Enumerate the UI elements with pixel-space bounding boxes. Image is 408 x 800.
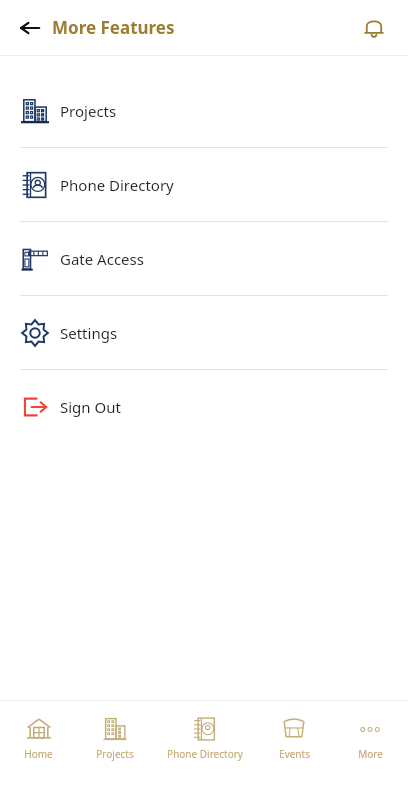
button[interactable]: More: [332, 701, 408, 774]
staticText: Events: [279, 747, 310, 761]
staticText: Projects: [60, 101, 117, 121]
staticText: Phone Directory: [167, 747, 243, 761]
staticText: Gate Access: [60, 249, 144, 269]
button[interactable]: Projects: [0, 74, 408, 147]
staticText: Sign Out: [60, 397, 121, 417]
staticText: Home: [24, 747, 53, 761]
button[interactable]: Back: [12, 10, 48, 46]
button[interactable]: Phone Directory: [153, 701, 256, 774]
button[interactable]: Events: [256, 701, 332, 774]
staticText: More Features: [52, 16, 175, 39]
button[interactable]: Home: [0, 701, 77, 774]
button[interactable]: Projects: [77, 701, 153, 774]
button[interactable]: Phone Directory: [0, 148, 408, 221]
staticText: Phone Directory: [60, 175, 174, 195]
staticText: Settings: [60, 323, 118, 343]
button[interactable]: Settings: [0, 296, 408, 369]
staticText: Projects: [96, 747, 134, 761]
button[interactable]: Sign Out: [0, 370, 408, 443]
staticText: More: [358, 747, 383, 761]
button[interactable]: Notifications: [354, 8, 394, 48]
button[interactable]: Gate Access: [0, 222, 408, 295]
